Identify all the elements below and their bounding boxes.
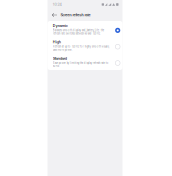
staticText: 10:24 [52,2,61,7]
button[interactable]: Back [52,13,57,17]
staticText: Dynamic [53,23,68,28]
staticText: High [53,40,61,44]
staticText: Standard [53,56,67,61]
button[interactable]: High [47,37,122,54]
staticText: Refresh at up to 120 Hz for highly smoot… [53,45,110,51]
button[interactable]: Standard [47,54,122,70]
staticText: Screen refresh rate [60,13,90,17]
button[interactable]: Dynamic [47,21,122,37]
staticText: Save power by limiting the display refre… [53,61,109,68]
staticText: Balances smooth display and battery life… [53,29,104,35]
